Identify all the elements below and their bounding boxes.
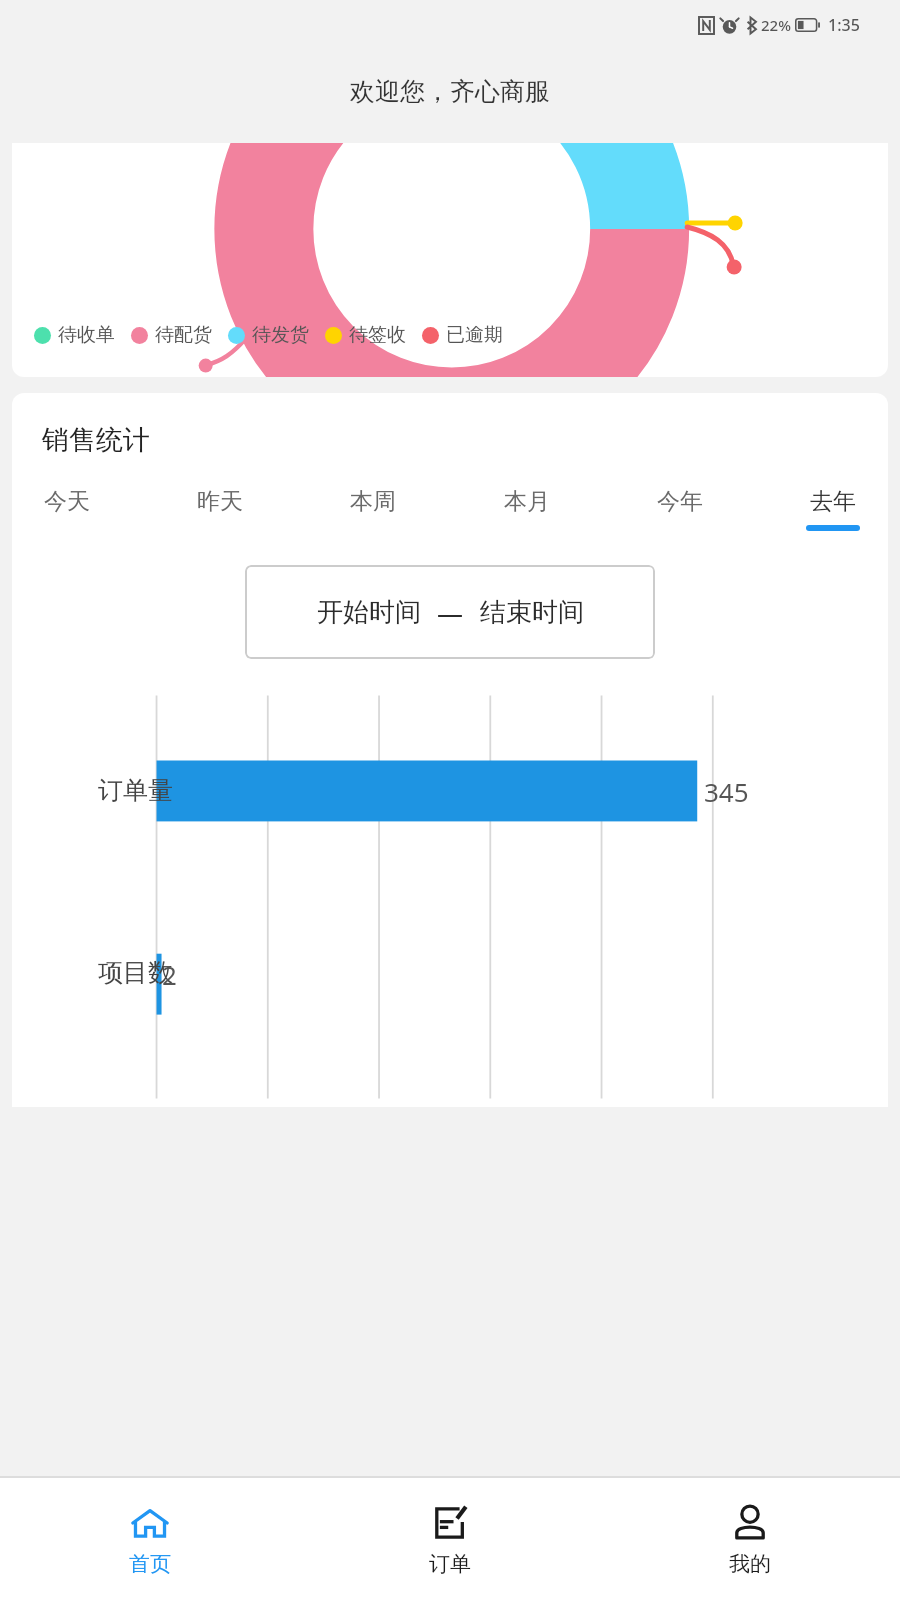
staticText: 开始时间 xyxy=(317,596,421,629)
staticText: 已逾期 xyxy=(446,323,503,347)
button[interactable]: 我的 xyxy=(600,1501,900,1577)
button[interactable]: 开始时间 xyxy=(245,565,655,659)
staticText: 待收单 xyxy=(58,323,115,347)
button[interactable]: 首页 xyxy=(0,1501,300,1577)
staticText: 去年 xyxy=(810,487,856,516)
button[interactable]: 今年 xyxy=(639,485,721,533)
button[interactable]: 本月 xyxy=(486,485,568,533)
staticText: 本月 xyxy=(504,487,550,516)
staticText: 22% xyxy=(761,15,791,35)
button[interactable]: 订单 xyxy=(300,1501,600,1577)
staticText: 待配货 xyxy=(155,323,212,347)
staticText: 项目数 xyxy=(98,957,173,988)
staticText: 首页 xyxy=(129,1551,171,1577)
staticText: 345 xyxy=(704,774,749,809)
staticText: 今年 xyxy=(657,487,703,516)
button[interactable]: 本周 xyxy=(332,485,414,533)
staticText: 待发货 xyxy=(252,323,309,347)
button[interactable]: 去年 xyxy=(792,485,874,533)
staticText: 欢迎您，齐心商服 xyxy=(350,76,550,107)
staticText: 我的 xyxy=(729,1551,771,1577)
staticText: 待签收 xyxy=(349,323,406,347)
button[interactable]: 今天 xyxy=(26,485,108,533)
staticText: 订单量 xyxy=(98,775,173,806)
staticText: 昨天 xyxy=(197,487,243,516)
staticText: 2 xyxy=(162,957,177,992)
staticText: 销售统计 xyxy=(42,423,150,457)
staticText: — xyxy=(437,595,464,630)
button[interactable]: 昨天 xyxy=(179,485,261,533)
staticText: 今天 xyxy=(44,487,90,516)
staticText: 结束时间 xyxy=(480,596,584,629)
staticText: 订单 xyxy=(429,1551,471,1577)
staticText: 本周 xyxy=(350,487,396,516)
staticText: 1:35 xyxy=(828,14,860,36)
